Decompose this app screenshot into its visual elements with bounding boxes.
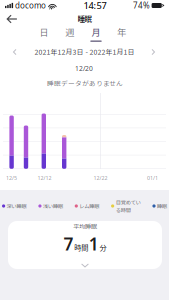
staticText: 時間 bbox=[74, 242, 88, 253]
button[interactable]: Next period bbox=[145, 45, 161, 59]
staticText: 年 bbox=[117, 25, 126, 38]
staticText: 浅い睡眠 bbox=[43, 202, 63, 210]
staticText: 12/5 bbox=[6, 174, 17, 182]
staticText: 14:57 bbox=[83, 0, 106, 12]
button[interactable]: 日 bbox=[31, 26, 57, 40]
staticText: 睡眠 bbox=[157, 202, 167, 210]
staticText: 12/12 bbox=[37, 174, 51, 182]
staticText: docomo bbox=[15, 0, 46, 11]
staticText: 週 bbox=[65, 25, 74, 38]
button[interactable]: 年 bbox=[109, 26, 134, 40]
staticText: 目覚めてい bbox=[116, 198, 141, 206]
staticText: 睡眠データがありません bbox=[47, 78, 123, 88]
staticText: 日 bbox=[39, 25, 48, 38]
button[interactable]: 月 bbox=[83, 26, 109, 40]
staticText: 7 bbox=[64, 232, 74, 255]
staticText: レム睡眠 bbox=[79, 202, 99, 210]
button[interactable]: Previous period bbox=[7, 45, 23, 59]
staticText: 分 bbox=[99, 242, 106, 253]
button[interactable]: 週 bbox=[57, 26, 83, 40]
staticText: 平均睡眠 bbox=[73, 222, 97, 231]
staticText: 12/22 bbox=[93, 174, 107, 182]
staticText: 深い睡眠 bbox=[7, 202, 27, 210]
staticText: 2021年12月3日 - 2022年1月1日 bbox=[34, 47, 134, 57]
staticText: 01/1 bbox=[147, 174, 158, 182]
staticText: 1 bbox=[89, 232, 99, 255]
staticText: 月 bbox=[91, 25, 100, 38]
staticText: 74% bbox=[133, 0, 150, 11]
button[interactable]: Back bbox=[0, 11, 24, 27]
staticText: 睡眠 bbox=[77, 13, 91, 24]
staticText: る時間 bbox=[116, 206, 131, 214]
button[interactable]: 平均睡眠 bbox=[8, 221, 162, 269]
staticText: 12/20 bbox=[75, 64, 93, 73]
